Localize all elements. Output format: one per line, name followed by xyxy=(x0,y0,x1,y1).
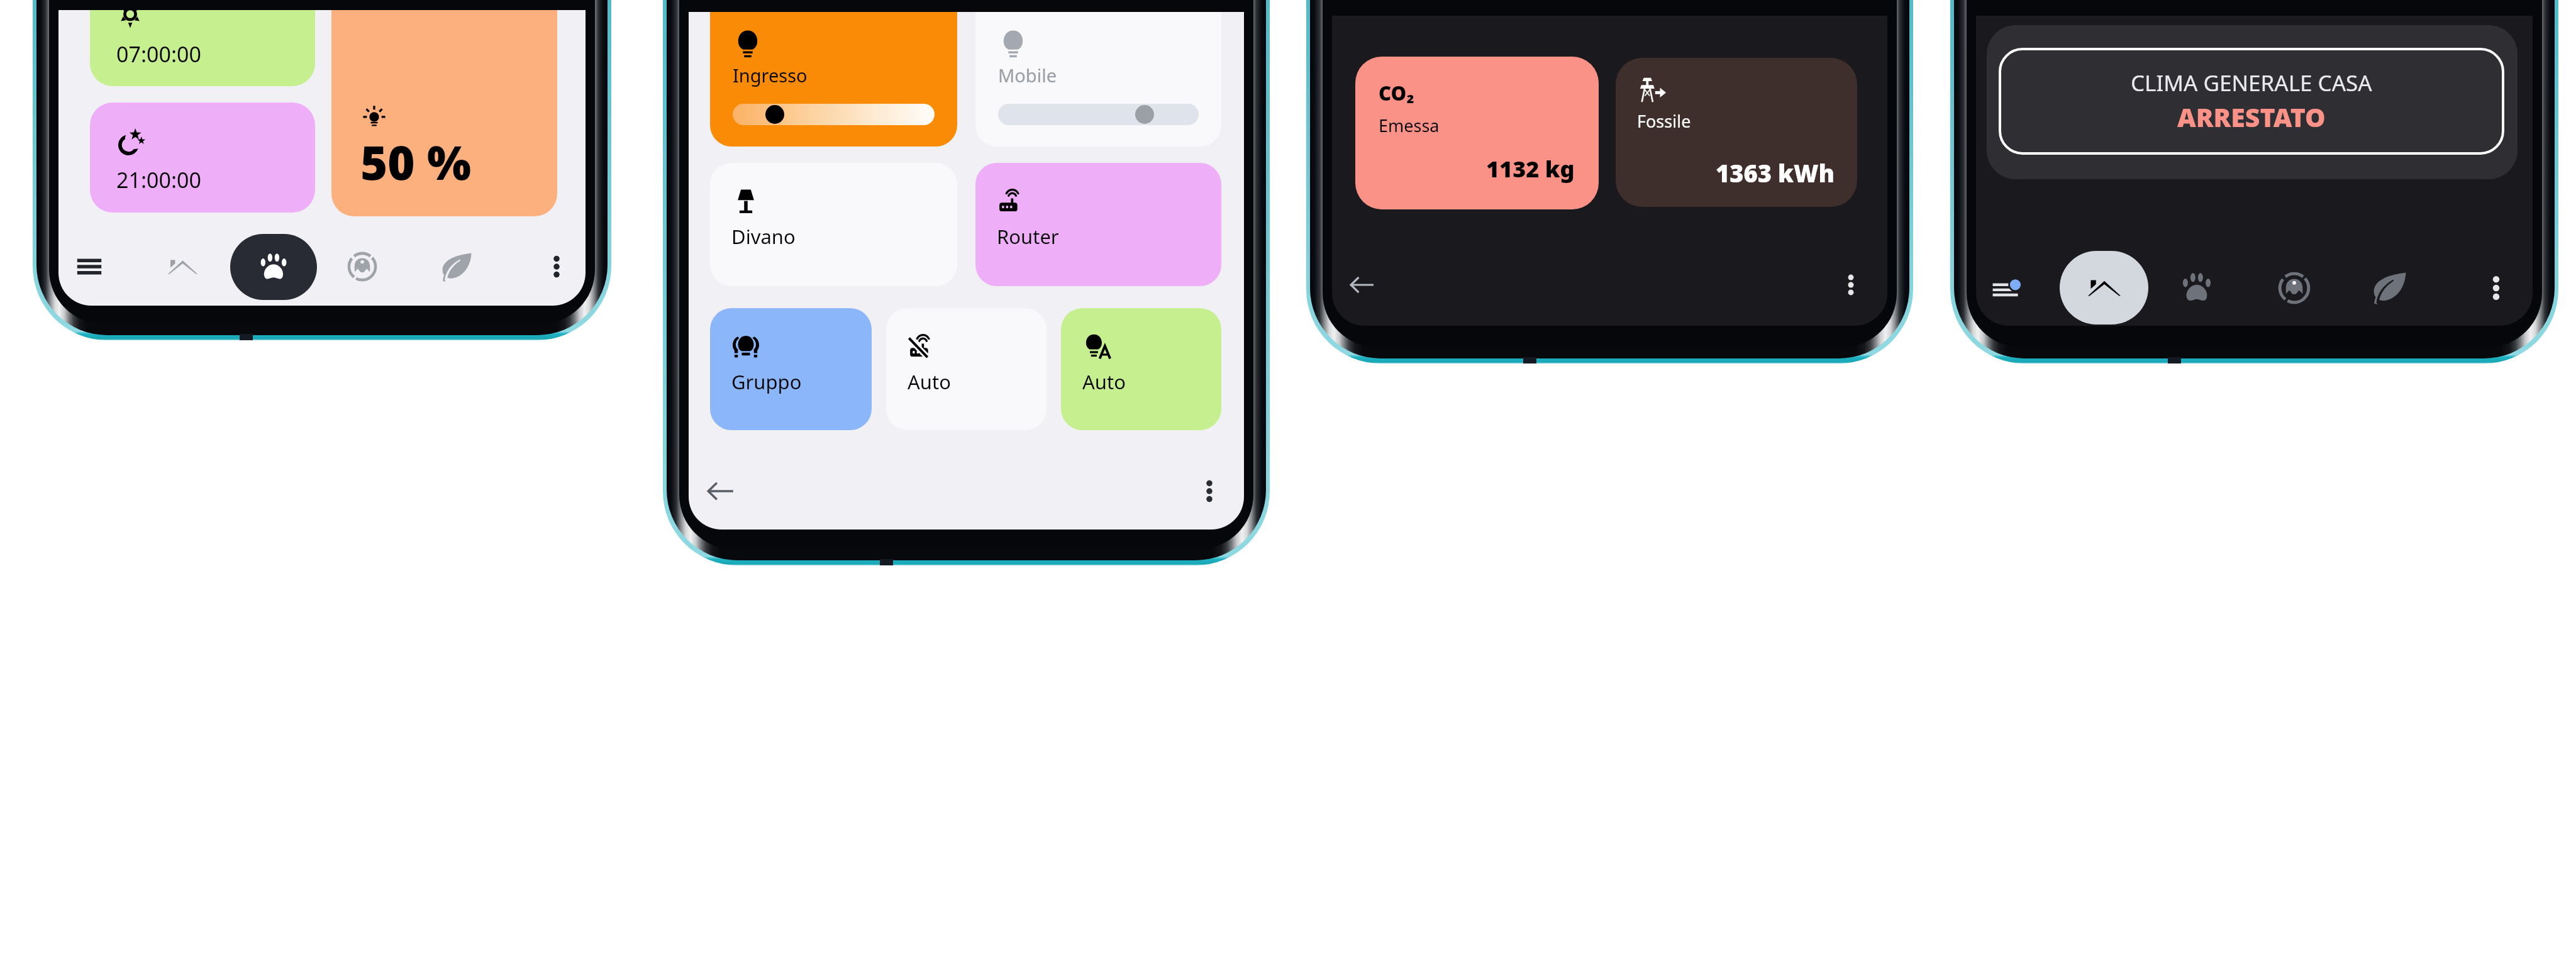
button[interactable]: Divano xyxy=(710,163,957,286)
staticText: 21:00:00 xyxy=(116,165,201,194)
staticText: Auto xyxy=(908,369,951,395)
staticText: Fossile xyxy=(1637,109,1691,133)
button[interactable]: 21:00:00 xyxy=(90,103,315,213)
staticText: Auto xyxy=(1082,369,1126,395)
button[interactable]: Gruppo xyxy=(710,308,872,430)
button[interactable]: Auto xyxy=(1061,308,1221,430)
staticText: 1363 kWh xyxy=(1716,157,1835,189)
staticText: Divano xyxy=(731,223,796,250)
button[interactable]: Router xyxy=(975,163,1221,286)
button[interactable]: CLIMA GENERALE CASA xyxy=(1987,25,2518,179)
button[interactable]: Auto xyxy=(886,308,1046,430)
button[interactable]: 07:00:00 xyxy=(90,10,315,86)
button[interactable]: Menu xyxy=(1985,265,2031,311)
button[interactable]: Vacuum xyxy=(340,244,385,289)
button[interactable]: Vacuum xyxy=(2272,265,2317,311)
button[interactable]: More xyxy=(1828,262,1874,308)
button[interactable]: Energy xyxy=(2367,265,2412,311)
button[interactable]: More xyxy=(1187,469,1232,514)
staticText: CO₂ xyxy=(1379,80,1414,106)
button[interactable]: 50 % xyxy=(331,10,557,216)
staticText: Ingresso xyxy=(733,63,808,87)
staticText: 1132 kg xyxy=(1486,153,1575,184)
button[interactable]: Home xyxy=(2060,251,2148,324)
staticText: Emessa xyxy=(1379,114,1440,137)
staticText: Mobile xyxy=(998,63,1057,87)
button[interactable]: Back xyxy=(698,469,743,514)
staticText: Gruppo xyxy=(731,369,802,395)
button[interactable]: Energy xyxy=(434,244,479,289)
button[interactable]: Home xyxy=(160,244,205,289)
staticText: 07:00:00 xyxy=(116,40,201,69)
staticText: CLIMA GENERALE CASA xyxy=(2131,68,2372,98)
button[interactable]: Pets xyxy=(2174,265,2219,311)
button[interactable]: Pets xyxy=(230,234,317,300)
button[interactable]: More xyxy=(2473,265,2519,311)
staticText: Router xyxy=(997,223,1059,250)
button[interactable]: Mobile xyxy=(975,12,1221,147)
staticText: 50 % xyxy=(360,130,472,194)
button[interactable]: Menu xyxy=(67,244,112,289)
staticText: ARRESTATO xyxy=(2177,99,2326,135)
button[interactable]: Fossile xyxy=(1616,58,1857,207)
button[interactable]: Back xyxy=(1340,262,1385,308)
button[interactable]: Ingresso xyxy=(710,12,957,147)
button[interactable]: More xyxy=(534,244,579,289)
button[interactable]: CO₂ xyxy=(1355,57,1599,209)
